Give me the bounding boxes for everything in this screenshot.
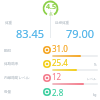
staticText: 体重 xyxy=(5,21,12,25)
staticText: 83.45 xyxy=(16,26,45,40)
button[interactable]: 骨量 xyxy=(0,85,100,99)
staticText: レベル xyxy=(87,77,97,81)
button[interactable]: 目標体重 xyxy=(50,21,100,40)
staticText: 31.0 xyxy=(52,43,68,54)
staticText: 点 xyxy=(49,12,53,16)
staticText: 79.00 xyxy=(66,26,95,40)
staticText: 骨量 xyxy=(4,90,12,95)
staticText: 12 xyxy=(52,71,62,82)
staticText: 4.5 xyxy=(46,2,56,12)
staticText: 25.4 xyxy=(52,57,68,68)
staticText: BMI xyxy=(4,48,11,53)
staticText: kg xyxy=(93,93,97,97)
button[interactable]: 内臓脂肪レベル xyxy=(0,71,100,85)
button[interactable]: 体重 xyxy=(0,21,50,40)
button[interactable]: BMI xyxy=(0,43,100,57)
staticText: 体脂肪率 xyxy=(4,62,19,67)
staticText: 2.8 xyxy=(52,87,64,98)
staticText: 内臓脂肪レベル xyxy=(4,76,30,81)
staticText: 目標体重 xyxy=(55,21,69,25)
staticText: % xyxy=(94,63,97,67)
button[interactable]: 体脂肪率 xyxy=(0,57,100,71)
button[interactable]: Score 4.5 xyxy=(0,0,100,17)
